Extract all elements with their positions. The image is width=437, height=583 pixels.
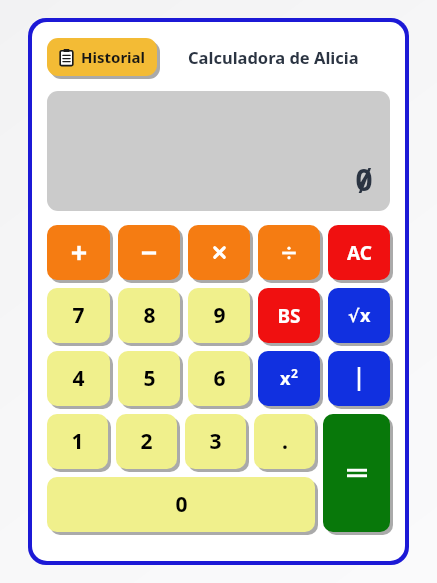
staticText: 2: [291, 365, 298, 381]
staticText: 6: [213, 364, 226, 393]
staticText: 0: [175, 490, 188, 519]
staticText: Calculadora de Alicia: [188, 46, 359, 68]
button[interactable]: Valor absoluto: [328, 351, 390, 406]
staticText: 1: [71, 427, 84, 456]
staticText: 8: [143, 301, 156, 330]
button[interactable]: Sumar: [47, 225, 110, 280]
staticText: Historial: [81, 47, 146, 67]
button[interactable]: Borrar: [258, 288, 320, 343]
button[interactable]: 4: [47, 351, 110, 406]
button[interactable]: 1: [47, 414, 108, 469]
button[interactable]: 9: [188, 288, 250, 343]
button[interactable]: 0: [47, 477, 315, 532]
button[interactable]: Igual: [323, 414, 390, 532]
button[interactable]: 2: [116, 414, 177, 469]
button[interactable]: 5: [118, 351, 180, 406]
button[interactable]: Dividir: [258, 225, 320, 280]
staticText: x: [360, 303, 371, 328]
staticText: 0̸: [355, 159, 373, 200]
staticText: 4: [72, 364, 85, 393]
staticText: 9: [213, 301, 226, 330]
staticText: 3: [209, 427, 222, 456]
staticText: BS: [277, 303, 301, 329]
button[interactable]: 3: [185, 414, 246, 469]
staticText: 2: [140, 427, 153, 456]
button[interactable]: Raiz cuadrada: [328, 288, 390, 343]
staticText: 7: [72, 301, 85, 330]
button[interactable]: Restar: [118, 225, 180, 280]
staticText: x: [280, 366, 291, 391]
button[interactable]: 8: [118, 288, 180, 343]
staticText: 5: [143, 364, 156, 393]
staticText: √: [348, 306, 360, 326]
button[interactable]: 7: [47, 288, 110, 343]
button[interactable]: 0̸: [47, 91, 390, 211]
button[interactable]: Multiplicar: [188, 225, 250, 280]
button[interactable]: Historial: [47, 38, 157, 76]
staticText: AC: [347, 240, 372, 266]
button[interactable]: 6: [188, 351, 250, 406]
button[interactable]: Al cuadrado: [258, 351, 320, 406]
button[interactable]: Punto decimal: [254, 414, 315, 469]
button[interactable]: AC: [328, 225, 390, 280]
staticText: .: [282, 427, 288, 456]
